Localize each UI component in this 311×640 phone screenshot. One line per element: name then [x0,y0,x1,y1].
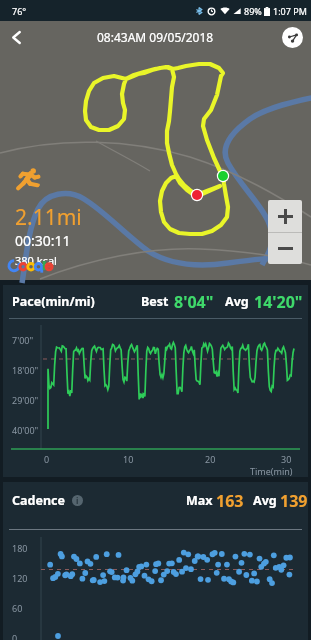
staticText: 40'00" [12,424,39,436]
staticText: Best [141,293,169,310]
button[interactable]: Back [0,21,32,53]
staticText: 8'04" [174,291,214,313]
staticText: 30 [281,453,292,465]
staticText: 00:30:11 [15,231,71,250]
staticText: 1:07 PM [273,5,307,17]
staticText: 139 [280,490,308,512]
staticText: 14'20" [254,291,303,313]
staticText: 7'00" [12,334,34,346]
staticText: Max [186,492,213,509]
staticText: 0 [12,632,18,640]
staticText: 2.11mi [15,203,82,232]
staticText: 10 [123,453,134,465]
staticText: 20 [205,453,216,465]
staticText: 163 [216,490,244,512]
button[interactable]: Info [72,495,83,506]
staticText: 18'00" [12,364,39,376]
staticText: Time(min) [250,465,293,477]
staticText: 60 [12,602,23,614]
staticText: Cadence [12,492,65,509]
staticText: 180 [12,542,28,554]
staticText: Pace(min/mi) [12,293,95,310]
button[interactable]: Share [282,27,303,48]
staticText: 08:43AM 09/05/2018 [97,29,214,45]
staticText: 0 [44,453,50,465]
staticText: 76° [12,5,27,17]
staticText: i [76,495,79,506]
staticText: 29'00" [12,394,39,406]
staticText: 120 [12,572,28,584]
staticText: Avg [225,293,249,310]
staticText: 380 kcal [15,253,57,268]
button[interactable]: Zoom out [268,233,302,264]
staticText: 89% [244,5,262,17]
button[interactable]: Zoom in [268,200,302,232]
staticText: Avg [253,492,277,509]
